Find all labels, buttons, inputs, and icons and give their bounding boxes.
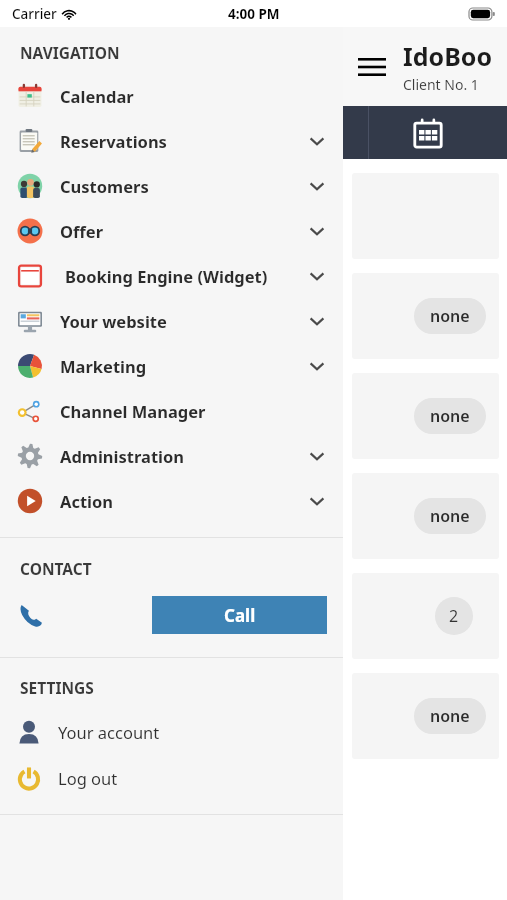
staticText: 4:00 PM — [228, 5, 280, 23]
staticText: Your website — [60, 310, 309, 332]
button[interactable]: 2 — [352, 573, 499, 659]
button[interactable]: Calendar — [0, 73, 343, 118]
staticText: Marketing — [60, 355, 309, 377]
button[interactable]: Channel Manager — [0, 388, 343, 433]
button[interactable]: Calendar tab — [368, 106, 488, 159]
staticText: Customers — [60, 175, 309, 197]
staticText: 2 — [449, 605, 459, 627]
staticText: Booking Engine (Widget) — [65, 265, 309, 287]
staticText: Call — [224, 604, 256, 627]
button[interactable]: Log out — [0, 758, 343, 798]
staticText: Carrier — [12, 5, 57, 23]
staticText: Your account — [58, 721, 160, 743]
button[interactable]: Call phone — [0, 595, 62, 635]
staticText: Administration — [60, 445, 309, 467]
button[interactable]: none — [352, 473, 499, 559]
button[interactable]: Offer — [0, 208, 343, 253]
staticText: Channel Manager — [60, 400, 309, 422]
button[interactable]: Open navigation menu — [355, 50, 389, 84]
staticText: IdoBoo — [403, 39, 493, 73]
staticText: Offer — [60, 220, 309, 242]
staticText: none — [430, 405, 470, 427]
button[interactable]: Customers — [0, 163, 343, 208]
staticText: Action — [60, 490, 309, 512]
button[interactable]: Marketing — [0, 343, 343, 388]
staticText: none — [430, 505, 470, 527]
button[interactable]: none — [352, 373, 499, 459]
button[interactable]: Action — [0, 478, 343, 523]
button[interactable]: Administration — [0, 433, 343, 478]
staticText: none — [430, 705, 470, 727]
button[interactable]: none — [352, 673, 499, 759]
staticText: Reservations — [60, 130, 309, 152]
staticText: NAVIGATION — [20, 42, 120, 63]
staticText: SETTINGS — [20, 677, 94, 698]
staticText: Log out — [58, 767, 118, 789]
button[interactable]: Reservations — [0, 118, 343, 163]
staticText: Client No. 1 — [403, 75, 479, 94]
staticText: Calendar — [60, 85, 309, 107]
staticText: none — [430, 305, 470, 327]
button[interactable]: Booking Engine (Widget) — [0, 253, 343, 298]
staticText: CONTACT — [20, 558, 92, 579]
button[interactable]: Your website — [0, 298, 343, 343]
button[interactable]: Your account — [0, 712, 343, 752]
button[interactable]: Call — [152, 596, 327, 634]
button[interactable]: none — [352, 273, 499, 359]
